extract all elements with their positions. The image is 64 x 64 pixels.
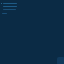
button[interactable] [0,12,64,14]
button[interactable] [0,5,64,7]
button[interactable] [0,8,64,10]
button[interactable] [0,2,64,4]
